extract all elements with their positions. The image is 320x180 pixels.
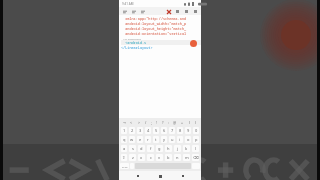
button[interactable]: h xyxy=(165,145,172,152)
staticText: ? xyxy=(162,120,164,125)
staticText: android:layout_width="match_p xyxy=(121,21,187,26)
staticText: w xyxy=(130,137,134,142)
staticText: x xyxy=(140,155,143,160)
staticText: ( xyxy=(189,120,191,125)
button[interactable]: s xyxy=(129,145,136,152)
staticText: android:layout_height="match_ xyxy=(121,26,187,31)
button[interactable]: n xyxy=(174,154,181,161)
button[interactable]: v xyxy=(156,154,163,161)
button[interactable]: p xyxy=(193,136,199,143)
staticText: y xyxy=(163,137,166,142)
staticText: t xyxy=(155,137,157,142)
button[interactable]: Recents xyxy=(179,172,187,180)
staticText: 5 xyxy=(155,128,158,133)
staticText: ; xyxy=(151,120,152,125)
button[interactable]: 1 xyxy=(121,127,127,134)
staticText: <android.s xyxy=(121,40,147,45)
button[interactable]: w xyxy=(129,136,135,143)
button[interactable]: u xyxy=(169,136,175,143)
staticText: 3 xyxy=(139,128,142,133)
button[interactable]: ) xyxy=(195,120,197,125)
staticText: s xyxy=(132,146,134,151)
button[interactable]: → xyxy=(123,121,126,125)
button[interactable]: < xyxy=(130,120,133,125)
button[interactable]: Action 2 xyxy=(193,9,198,14)
button[interactable]: q xyxy=(121,136,127,143)
button[interactable]: 6 xyxy=(161,127,167,134)
button[interactable]: b xyxy=(165,154,172,161)
button[interactable]: ; xyxy=(151,120,152,125)
button[interactable]: / xyxy=(145,120,147,125)
button[interactable]: : xyxy=(168,120,169,125)
button[interactable]: 3 xyxy=(137,127,143,134)
staticText: 2 xyxy=(131,128,134,133)
button[interactable]: Close xyxy=(166,9,171,14)
button[interactable]: o xyxy=(185,136,191,143)
button[interactable]: ⌫ xyxy=(192,154,199,161)
button[interactable]: c xyxy=(147,154,154,161)
button[interactable]: ! xyxy=(156,120,157,125)
staticText: d xyxy=(140,146,143,151)
staticText: ! xyxy=(156,120,157,125)
staticText: 1 xyxy=(123,128,126,133)
staticText: u xyxy=(171,137,174,142)
button[interactable]: z xyxy=(129,154,136,161)
staticText: android:orientation="vertical xyxy=(121,31,187,36)
button[interactable]: ( xyxy=(189,120,191,125)
button[interactable]: i xyxy=(177,136,183,143)
staticText: 9:41 AM xyxy=(122,2,134,6)
button[interactable]: Tool 2 xyxy=(140,9,145,14)
staticText: + xyxy=(181,120,184,125)
button[interactable]: x xyxy=(138,154,145,161)
button[interactable]: ? xyxy=(162,120,164,125)
staticText: 7 xyxy=(171,128,174,133)
button[interactable]: 2 xyxy=(129,127,135,134)
staticText: / xyxy=(145,120,147,125)
button[interactable]: l xyxy=(192,145,199,152)
staticText: o xyxy=(187,137,190,142)
button[interactable]: 8 xyxy=(177,127,183,134)
button[interactable]: Action 1 xyxy=(184,9,189,14)
staticText: 4 xyxy=(147,128,150,133)
staticText: e xyxy=(139,137,142,142)
button[interactable]: + xyxy=(181,120,184,125)
button[interactable]: Back xyxy=(134,172,142,180)
button[interactable]: e xyxy=(137,136,143,143)
staticText: m xyxy=(185,155,189,160)
button[interactable]: m xyxy=(183,154,190,161)
button[interactable]: 4 xyxy=(145,127,151,134)
staticText: z xyxy=(132,155,134,160)
staticText: h xyxy=(167,146,170,151)
button[interactable]: k xyxy=(183,145,190,152)
button[interactable]: t xyxy=(153,136,159,143)
button[interactable]: ⇧ xyxy=(121,154,127,161)
button[interactable]: 0 xyxy=(193,127,199,134)
button[interactable]: 9 xyxy=(185,127,191,134)
button[interactable]: Run xyxy=(190,40,197,47)
button[interactable]: g xyxy=(156,145,163,152)
button[interactable]: Action 0 xyxy=(175,9,180,14)
button[interactable]: 7 xyxy=(169,127,175,134)
staticText: k xyxy=(185,146,188,151)
staticText: n xyxy=(176,155,179,160)
button[interactable]: f xyxy=(147,145,154,152)
button[interactable]: Tool 1 xyxy=(131,9,136,14)
button[interactable]: ?123 xyxy=(120,163,129,169)
staticText: ⇧ xyxy=(122,155,126,160)
button[interactable]: y xyxy=(161,136,167,143)
button[interactable]: > xyxy=(138,120,141,125)
button[interactable]: @ xyxy=(173,120,177,125)
staticText: v xyxy=(158,155,161,160)
button[interactable]: d xyxy=(138,145,145,152)
button[interactable]: Tool 0 xyxy=(122,9,127,14)
button[interactable]: a xyxy=(121,145,127,152)
button[interactable]: 5 xyxy=(153,127,159,134)
button[interactable]: Home xyxy=(156,172,164,180)
button[interactable]: j xyxy=(174,145,181,152)
staticText: 6 xyxy=(163,128,166,133)
button[interactable]: r xyxy=(145,136,151,143)
staticText: 8 xyxy=(179,128,182,133)
